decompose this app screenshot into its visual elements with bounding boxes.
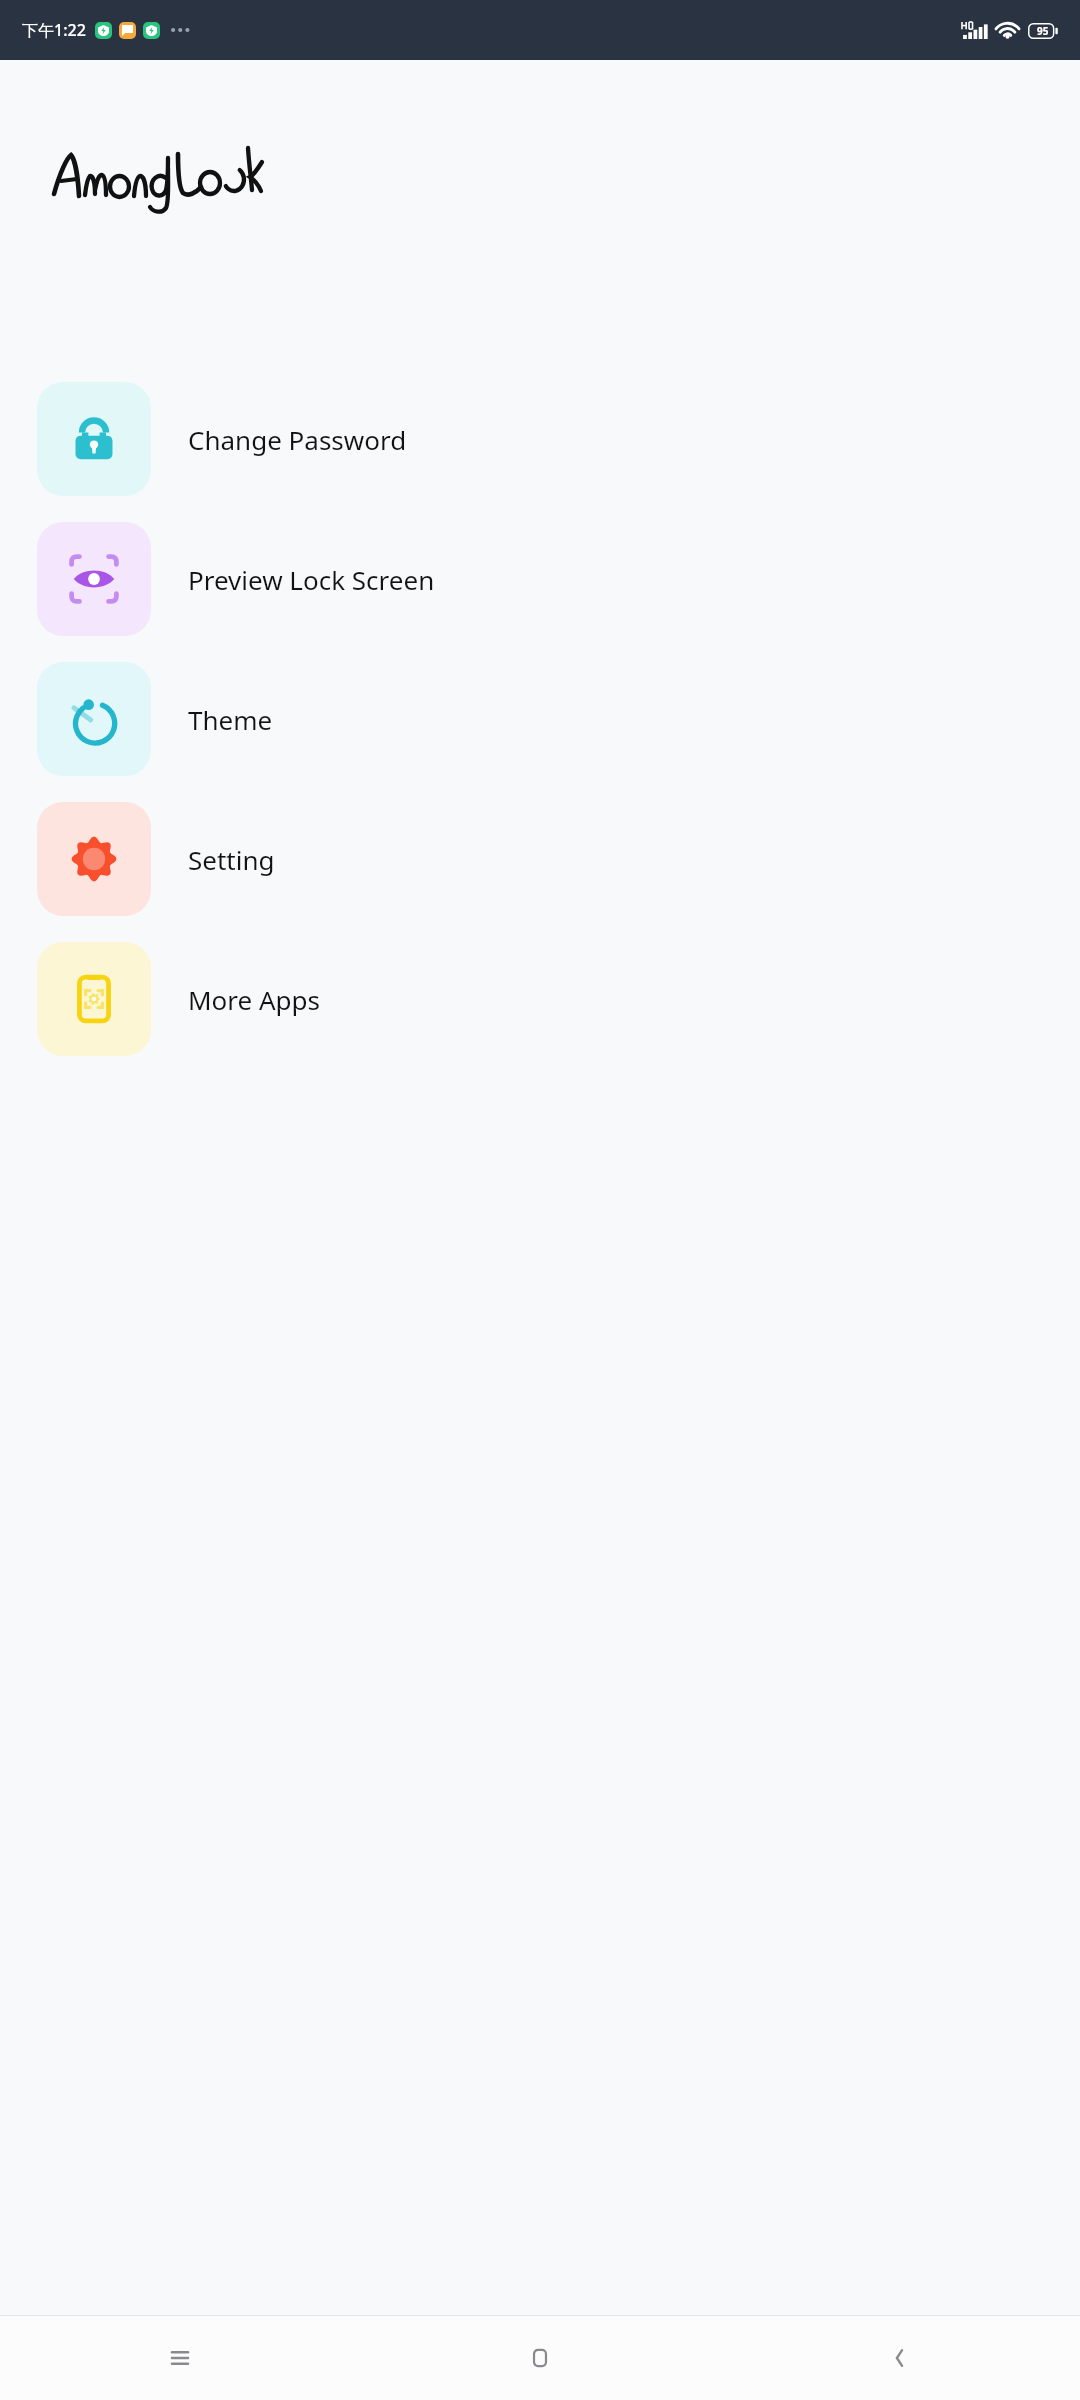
staticText: Change Password [188, 422, 407, 457]
staticText: 95 [1037, 24, 1049, 38]
button[interactable]: Back [720, 2316, 1080, 2400]
staticText: Preview Lock Screen [188, 562, 435, 597]
button[interactable]: Setting [0, 802, 1080, 916]
button[interactable]: Home [360, 2316, 720, 2400]
staticText: Theme [188, 702, 273, 737]
button[interactable]: Recent apps [0, 2316, 360, 2400]
button[interactable]: Preview Lock Screen [0, 522, 1080, 636]
button[interactable]: Change Password [0, 382, 1080, 496]
button[interactable]: More Apps [0, 942, 1080, 1056]
button[interactable]: Theme [0, 662, 1080, 776]
staticText: Setting [188, 842, 275, 877]
staticText: More Apps [188, 982, 321, 1017]
staticText: 下午1:22 [22, 19, 86, 41]
